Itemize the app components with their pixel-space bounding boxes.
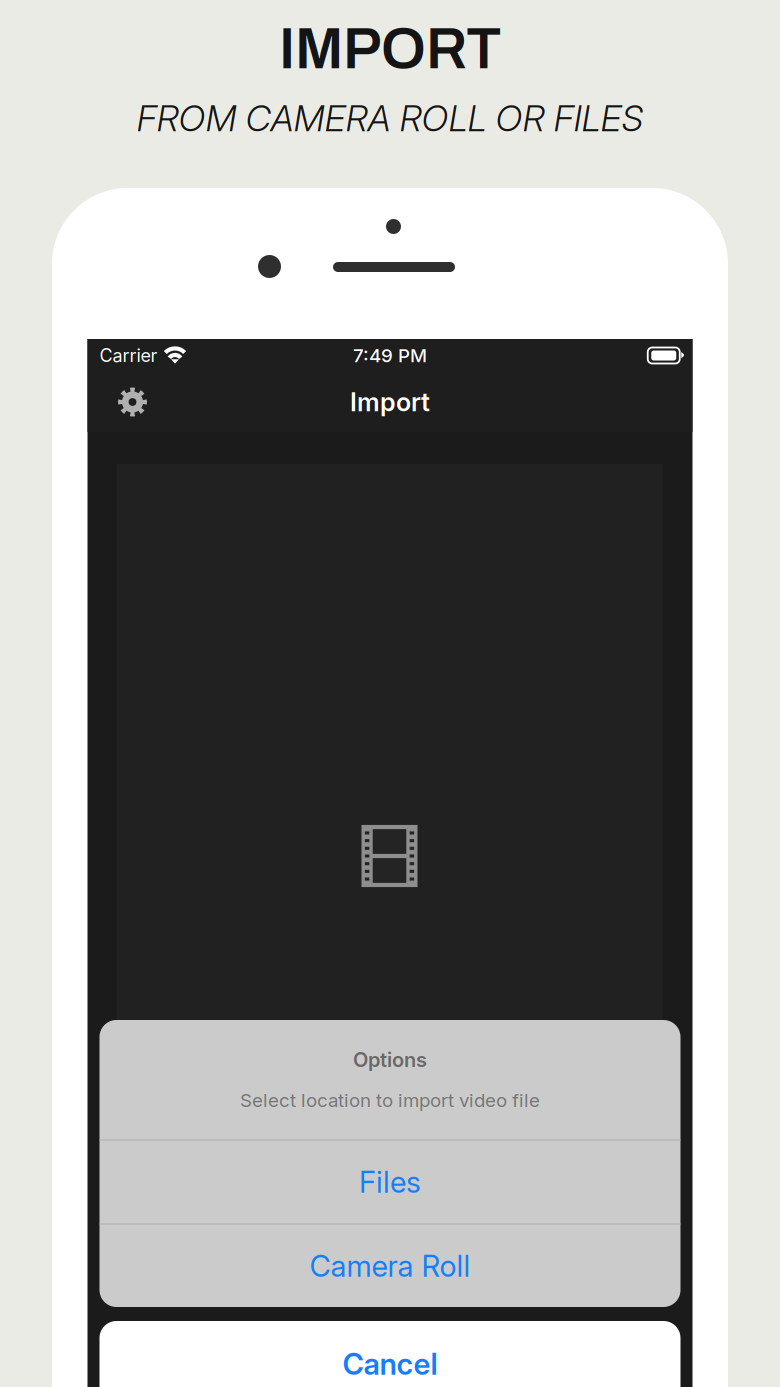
staticText: 7:49 PM: [353, 344, 427, 367]
staticText: Files: [359, 1164, 421, 1200]
staticText: IMPORT: [279, 18, 501, 80]
staticText: Select location to import video file: [240, 1089, 540, 1111]
staticText: Carrier: [99, 345, 157, 366]
button[interactable]: Files: [99, 1140, 680, 1223]
staticText: Options: [353, 1048, 427, 1072]
staticText: FROM CAMERA ROLL OR FILES: [136, 96, 643, 140]
button[interactable]: Settings: [87, 376, 177, 428]
staticText: Cancel: [342, 1346, 437, 1382]
button[interactable]: Cancel: [99, 1321, 680, 1387]
staticText: Import: [350, 387, 430, 417]
button[interactable]: Camera Roll: [99, 1224, 680, 1307]
staticText: Camera Roll: [309, 1248, 470, 1284]
